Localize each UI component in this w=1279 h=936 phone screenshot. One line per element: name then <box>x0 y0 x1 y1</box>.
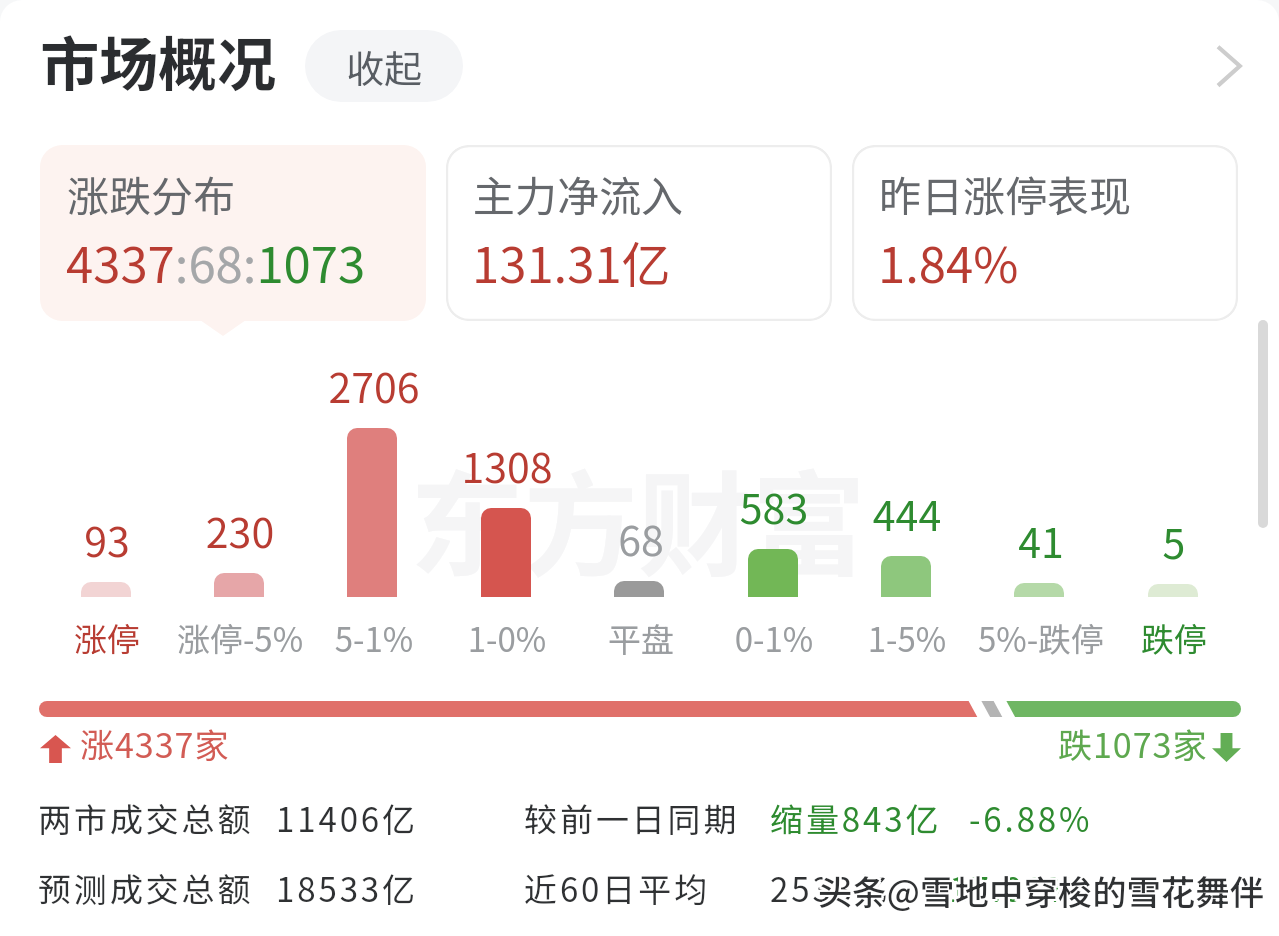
staticText: 东方财富 <box>410 435 867 600</box>
staticText: 头条@雪地中穿梭的雪花舞伴 <box>818 864 1265 913</box>
staticText: 涨4337家 <box>80 719 230 768</box>
staticText: 涨停-5% <box>155 614 325 662</box>
staticText: 1-5% <box>822 614 992 662</box>
staticText: 两市成交总额 <box>38 794 254 842</box>
staticText: 41 <box>961 510 1121 569</box>
staticText: 缩量843亿 <box>770 794 942 842</box>
staticText: 头条@雪地中穿梭的雪花舞伴 <box>818 866 1265 915</box>
staticText: 230 <box>160 500 320 559</box>
staticText: 头条@雪地中穿梭的雪花舞伴 <box>816 864 1263 913</box>
staticText: 市场概况 <box>40 18 277 103</box>
staticText: 昨日涨停表现 <box>879 163 1132 224</box>
button[interactable]: 收起 <box>305 30 463 102</box>
staticText: 444 <box>827 483 987 542</box>
staticText: 5 <box>1094 511 1254 570</box>
staticText: 2706 <box>294 355 454 414</box>
staticText: 头条@雪地中穿梭的雪花舞伴 <box>816 868 1263 917</box>
staticText: 1308 <box>427 435 587 494</box>
staticText: 0-1% <box>689 614 859 662</box>
staticText: 较前一日同期 <box>524 794 740 842</box>
staticText: 18533亿 <box>276 864 418 912</box>
staticText: 头条@雪地中穿梭的雪花舞伴 <box>816 866 1263 915</box>
button[interactable]: 涨跌分布 <box>40 145 426 321</box>
button[interactable]: 昨日涨停表现 <box>852 145 1238 321</box>
staticText: 头条@雪地中穿梭的雪花舞伴 <box>818 868 1265 917</box>
button[interactable]: 查看更多 <box>1188 26 1268 106</box>
staticText: 近60日平均 <box>524 864 711 912</box>
staticText: 1-0% <box>422 614 592 662</box>
staticText: -17.06% <box>935 864 1080 912</box>
staticText: 1.84% <box>878 226 1019 297</box>
staticText: 93 <box>27 509 187 568</box>
staticText: 预测成交总额 <box>38 864 254 912</box>
staticText: 主力净流入 <box>473 163 684 224</box>
staticText: 头条@雪地中穿梭的雪花舞伴 <box>820 868 1267 917</box>
staticText: 涨停 <box>22 614 192 662</box>
staticText: 5%-跌停 <box>956 614 1126 662</box>
staticText: 跌停 <box>1089 614 1259 662</box>
staticText: 583 <box>694 476 854 535</box>
staticText: 4337:68:1073 <box>66 226 366 297</box>
staticText: 68 <box>561 508 721 567</box>
staticText: 2533亿 <box>770 864 891 912</box>
button[interactable]: 主力净流入 <box>446 145 832 321</box>
staticText: 收起 <box>346 39 423 94</box>
staticText: -6.88% <box>969 794 1093 842</box>
staticText: 131.31亿 <box>472 226 671 297</box>
staticText: 平盘 <box>556 614 726 662</box>
staticText: 5-1% <box>289 614 459 662</box>
staticText: 跌1073家 <box>1058 719 1208 768</box>
staticText: 头条@雪地中穿梭的雪花舞伴 <box>820 866 1267 915</box>
staticText: 头条@雪地中穿梭的雪花舞伴 <box>820 864 1267 913</box>
staticText: 11406亿 <box>276 794 418 842</box>
staticText: 涨跌分布 <box>67 163 236 224</box>
